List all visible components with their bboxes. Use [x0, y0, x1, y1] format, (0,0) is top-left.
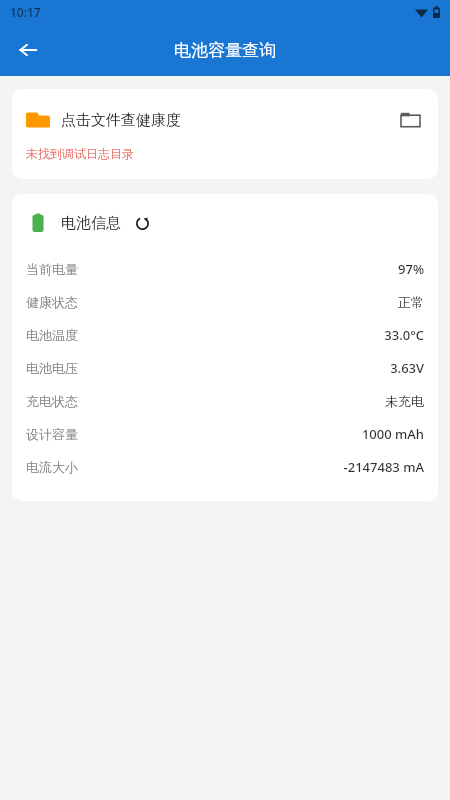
staticText: 未充电 [385, 393, 424, 409]
button[interactable]: Refresh [130, 211, 154, 235]
staticText: 1000 mAh [361, 425, 424, 443]
button[interactable]: 充电状态 [26, 384, 424, 417]
staticText: 充电状态 [26, 393, 78, 409]
staticText: 点击文件查健康度 [61, 111, 181, 130]
staticText: 设计容量 [26, 426, 78, 442]
staticText: 3.63V [390, 359, 424, 377]
staticText: 电流大小 [26, 459, 78, 475]
staticText: 未找到调试日志目录 [26, 146, 134, 161]
staticText: 正常 [398, 294, 424, 310]
staticText: 97% [398, 260, 424, 278]
staticText: 电池温度 [26, 327, 78, 343]
staticText: -2147483 mA [343, 458, 424, 476]
staticText: 10:17 [10, 4, 41, 20]
button[interactable]: 电池温度 [26, 318, 424, 351]
button[interactable]: 当前电量 [26, 252, 424, 285]
staticText: 电池信息 [61, 214, 121, 233]
staticText: 电池容量查询 [174, 40, 276, 61]
button[interactable]: 电流大小 [26, 450, 424, 483]
button[interactable]: Browse files [396, 106, 424, 134]
staticText: 当前电量 [26, 261, 78, 277]
staticText: 33.0°C [384, 326, 424, 344]
staticText: 健康状态 [26, 294, 78, 310]
button[interactable]: 电池电压 [26, 351, 424, 384]
button[interactable]: 设计容量 [26, 417, 424, 450]
staticText: 电池电压 [26, 360, 78, 376]
button[interactable]: 健康状态 [26, 285, 424, 318]
button[interactable]: 点击文件查健康度 [12, 89, 438, 140]
button[interactable]: Back [8, 30, 48, 70]
